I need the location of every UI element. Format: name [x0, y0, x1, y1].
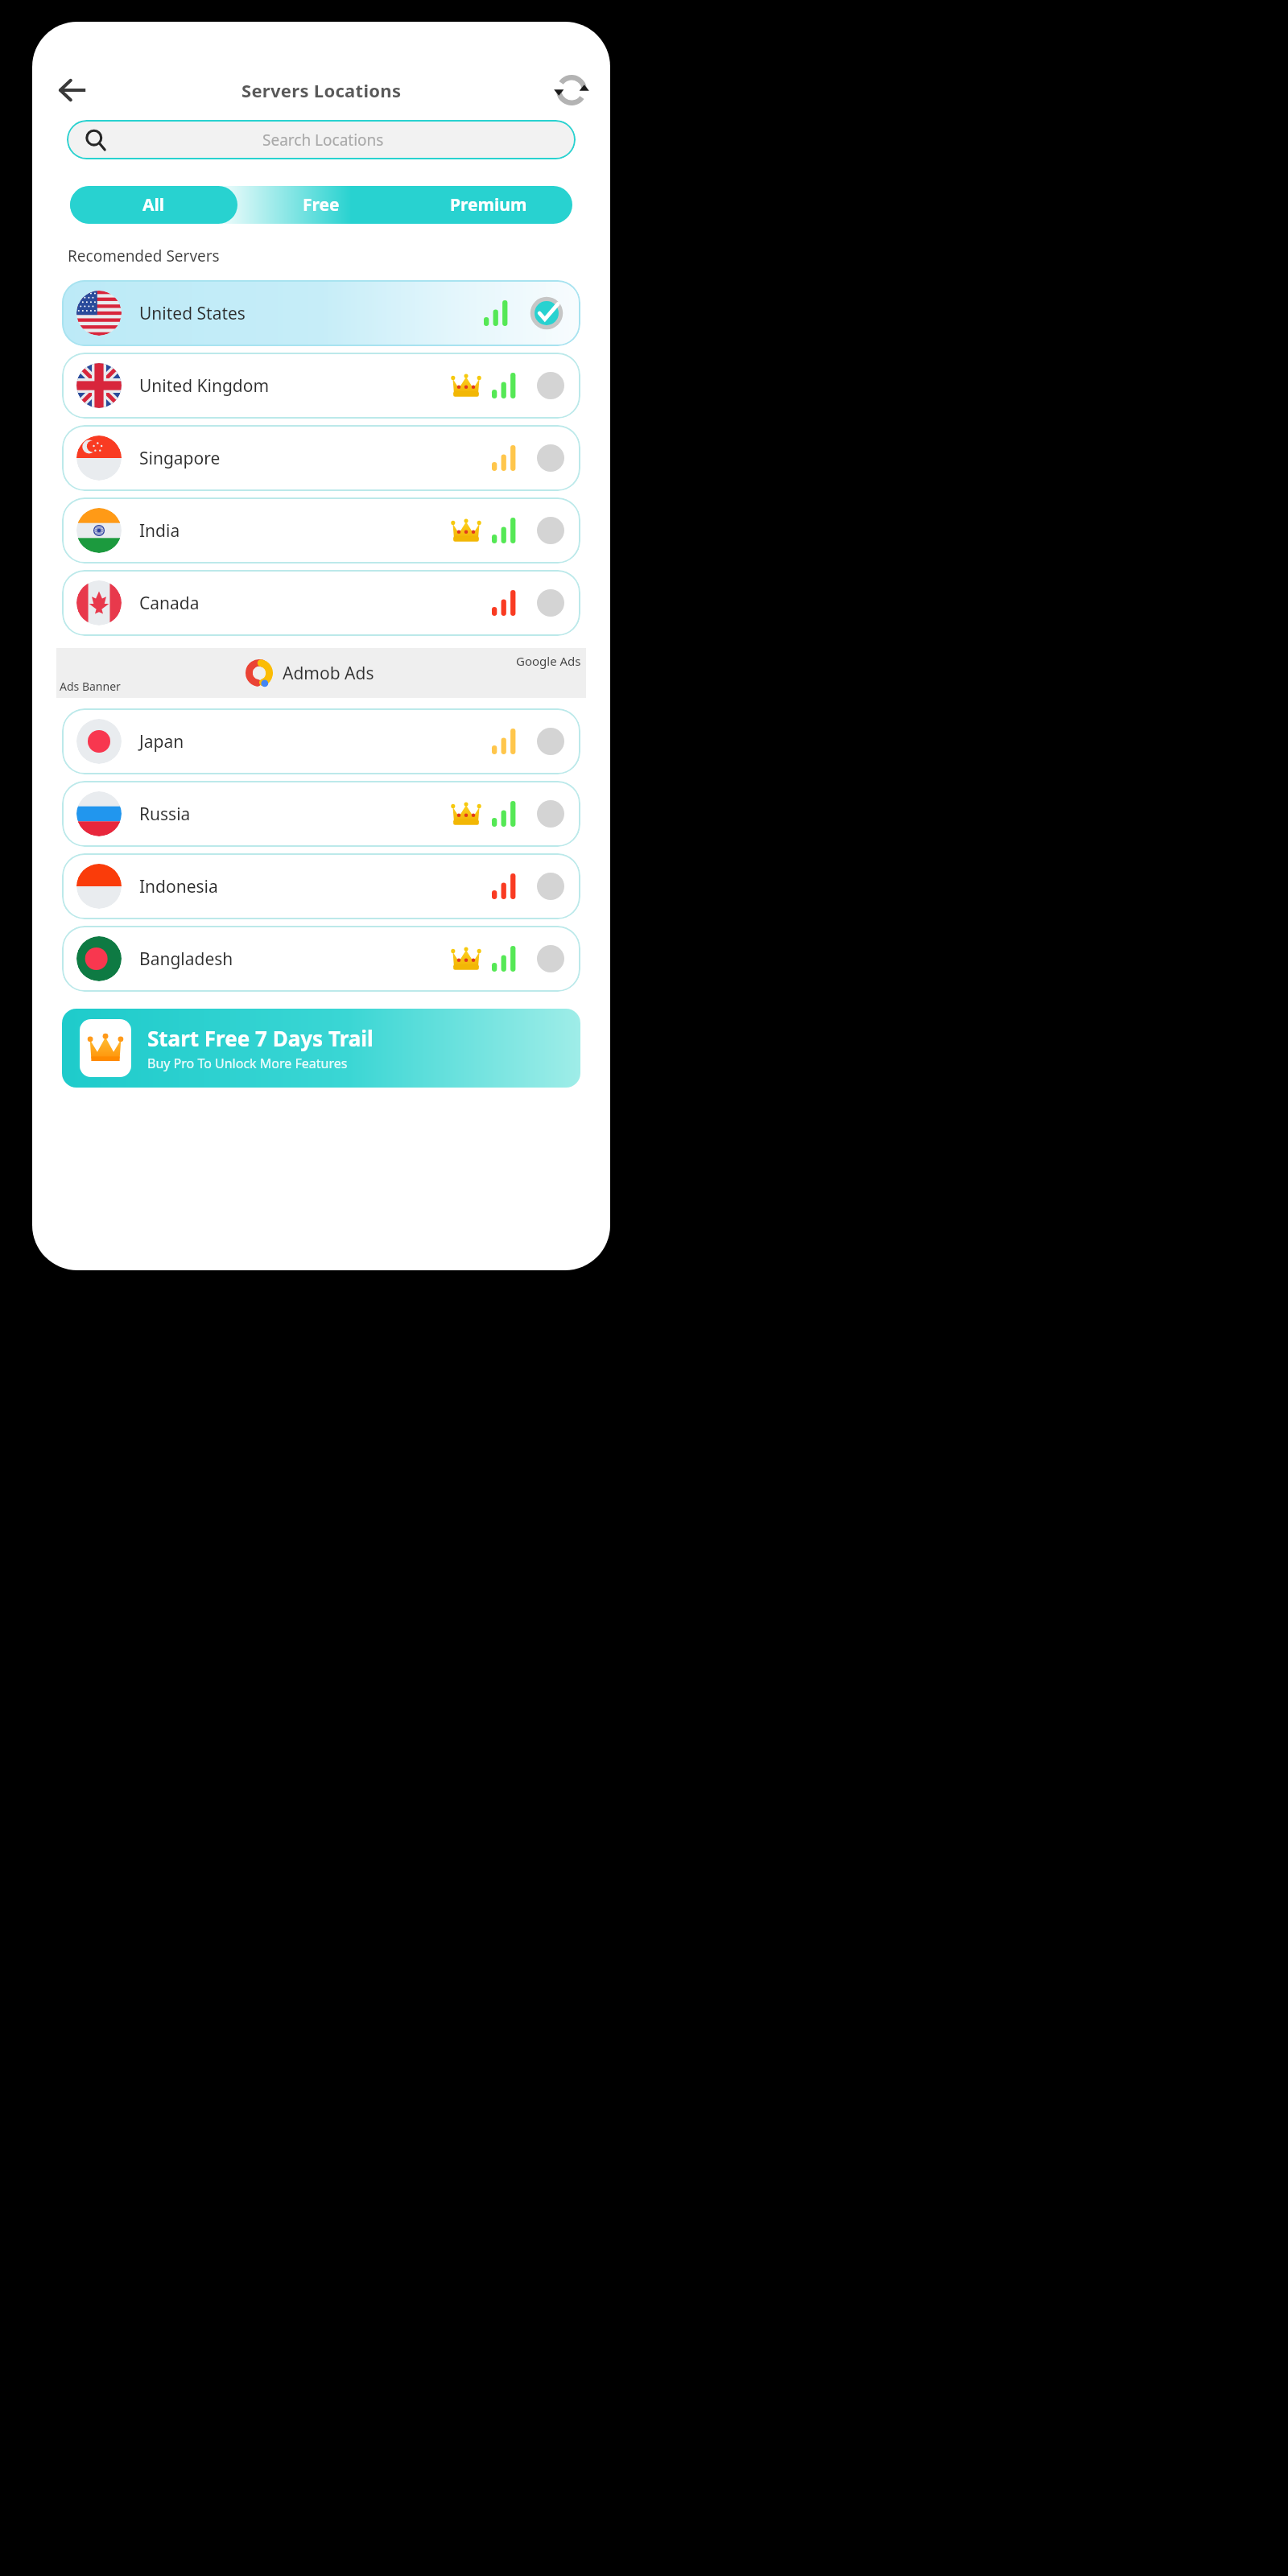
button[interactable]: Refresh	[547, 68, 596, 112]
staticText: Russia	[139, 803, 452, 826]
button[interactable]: Search Locations	[67, 120, 576, 159]
button[interactable]: United States	[62, 280, 580, 346]
button[interactable]: United Kingdom	[62, 353, 580, 419]
button[interactable]: All	[70, 186, 237, 224]
staticText: Buy Pro To Unlock More Features	[147, 1055, 348, 1072]
button[interactable]: Indonesia	[62, 853, 580, 919]
staticText: Ads Banner	[60, 679, 121, 694]
button[interactable]: India	[62, 497, 580, 563]
staticText: India	[139, 519, 452, 543]
button[interactable]: Premium	[405, 186, 572, 224]
staticText: Premium	[450, 193, 527, 217]
button[interactable]: Ads Banner	[56, 648, 586, 698]
staticText: United States	[139, 302, 484, 325]
staticText: Japan	[139, 730, 492, 753]
staticText: United Kingdom	[139, 374, 452, 398]
staticText: All	[142, 193, 165, 217]
staticText: Bangladesh	[139, 947, 452, 971]
staticText: Indonesia	[139, 875, 492, 898]
staticText: Start Free 7 Days Trail	[147, 1024, 374, 1052]
button[interactable]: Free	[237, 186, 405, 224]
staticText: Canada	[139, 592, 492, 615]
button[interactable]: Canada	[62, 570, 580, 636]
staticText: Google Ads	[516, 653, 581, 669]
staticText: Search Locations	[262, 130, 384, 151]
button[interactable]: Singapore	[62, 425, 580, 491]
button[interactable]: Japan	[62, 708, 580, 774]
staticText: Singapore	[139, 447, 492, 470]
button[interactable]: Bangladesh	[62, 926, 580, 992]
button[interactable]: Back	[48, 68, 97, 112]
button[interactable]: Russia	[62, 781, 580, 847]
staticText: Recomended Servers	[68, 246, 220, 266]
staticText: Servers Locations	[242, 78, 402, 102]
staticText: Admob Ads	[283, 662, 374, 685]
button[interactable]: Start Free 7 Days Trail	[62, 1009, 580, 1088]
staticText: Free	[303, 193, 340, 217]
